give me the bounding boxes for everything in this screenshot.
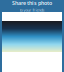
staticText: Share this photo [12,0,52,6]
staticText: to your friends [19,7,44,13]
